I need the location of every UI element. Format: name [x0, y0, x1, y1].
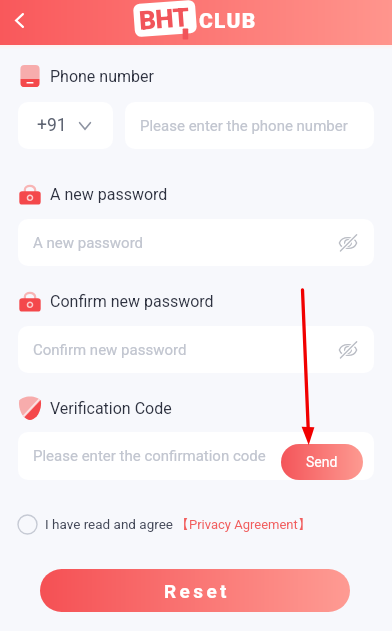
staticText: Please enter the confirmation code — [33, 447, 266, 465]
button[interactable]: Please enter the phone number — [125, 102, 374, 149]
staticText: Phone number — [50, 67, 154, 86]
staticText: A new password — [50, 185, 168, 204]
button[interactable]: Send — [281, 444, 363, 480]
button[interactable]: +91 — [18, 102, 113, 149]
staticText: 【Privacy Agreement】 — [176, 516, 311, 532]
staticText: Send — [306, 454, 338, 470]
button[interactable]: A new password — [18, 219, 374, 266]
staticText: A new password — [33, 234, 144, 252]
staticText: Please enter the phone number — [140, 117, 348, 135]
button[interactable]: Reset — [40, 569, 350, 612]
staticText: +91 — [37, 115, 67, 136]
button[interactable]: Back — [5, 6, 33, 34]
staticText: Verification Code — [50, 399, 172, 418]
button[interactable]: Show password — [334, 229, 362, 257]
staticText: Confirm new password — [33, 341, 187, 359]
staticText: BHT — [138, 2, 190, 36]
staticText: Confirm new password — [50, 292, 214, 311]
button[interactable]: Confirm new password — [18, 326, 374, 373]
button[interactable]: Show password — [334, 336, 362, 364]
staticText: Reset — [164, 580, 230, 602]
button[interactable]: I have read and agree — [17, 512, 311, 536]
staticText: CLUB — [199, 9, 257, 34]
staticText: I have read and agree — [45, 516, 174, 532]
